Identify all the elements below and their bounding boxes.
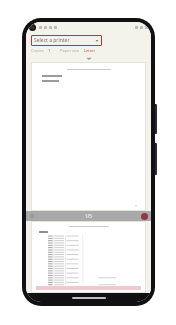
staticText: Paper size bbox=[60, 48, 80, 53]
staticText: 1/5 bbox=[85, 213, 92, 219]
button[interactable]: Expand print options bbox=[26, 55, 151, 62]
staticText: 1 bbox=[48, 48, 51, 53]
staticText: Select a printer bbox=[34, 37, 70, 44]
staticText: Letter bbox=[84, 48, 96, 53]
button[interactable] bbox=[32, 222, 145, 292]
button[interactable]: Print bbox=[141, 213, 148, 220]
button[interactable] bbox=[32, 63, 145, 210]
staticText: Copies bbox=[31, 48, 44, 53]
button[interactable]: Select a printer bbox=[31, 35, 102, 46]
